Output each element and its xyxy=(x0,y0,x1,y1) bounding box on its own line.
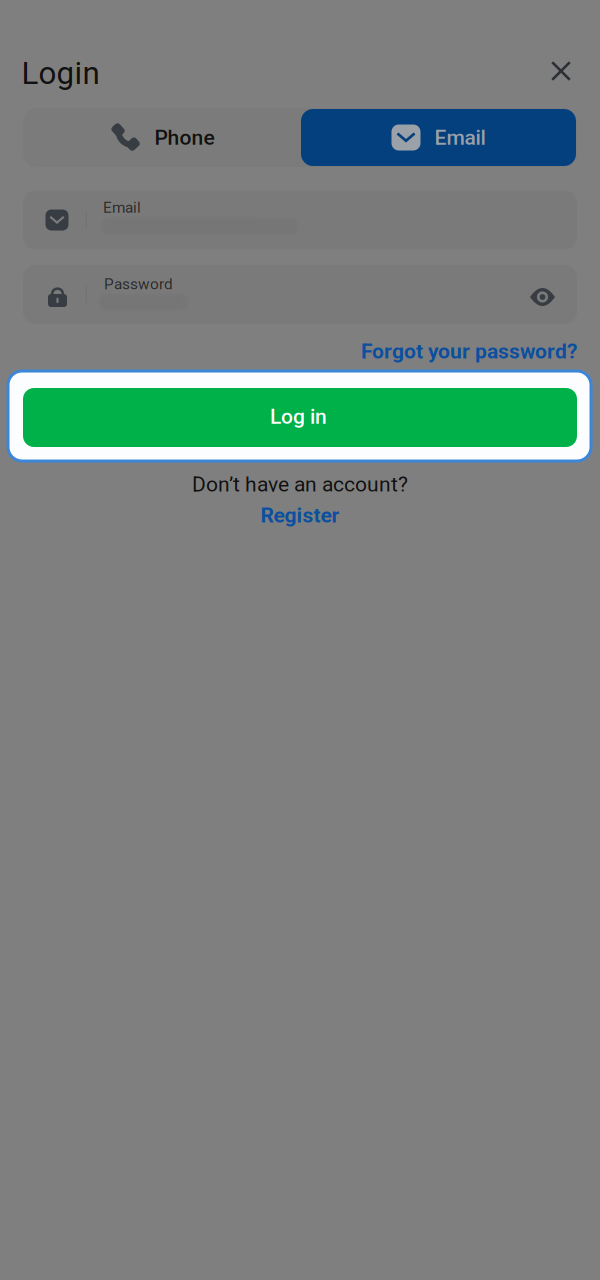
staticText: Register xyxy=(260,503,339,528)
staticText: Password xyxy=(104,275,173,293)
button[interactable]: Phone xyxy=(23,108,302,167)
button[interactable]: Email xyxy=(301,109,576,166)
button[interactable]: Register xyxy=(0,503,600,528)
staticText: Log in xyxy=(270,404,327,429)
staticText: Email xyxy=(103,198,141,216)
button[interactable]: Forgot your password? xyxy=(361,339,577,364)
staticText: Phone xyxy=(154,125,214,150)
button[interactable]: Show password xyxy=(515,267,569,326)
staticText: Email xyxy=(434,125,485,150)
button[interactable]: Close xyxy=(539,49,583,93)
staticText: Don’t have an account? xyxy=(192,472,408,497)
button[interactable]: Log in xyxy=(8,371,591,461)
staticText: Forgot your password? xyxy=(361,339,577,364)
staticText: Login xyxy=(21,55,99,92)
